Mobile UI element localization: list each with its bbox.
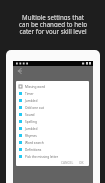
staticText: Spelling <box>25 120 37 124</box>
staticText: CANCEL <box>61 161 74 165</box>
button[interactable]: Sound <box>16 111 89 118</box>
staticText: Pick the missing letter <box>25 155 59 159</box>
staticText: Jumbled <box>25 127 38 131</box>
staticText: OK <box>79 161 84 165</box>
button[interactable]: Jumbled <box>16 125 89 132</box>
staticText: Rhymes <box>25 134 37 138</box>
staticText: Timer <box>25 92 34 96</box>
button[interactable]: CANCEL <box>60 161 75 165</box>
button[interactable]: Back <box>17 68 23 74</box>
staticText: Jumbled <box>25 99 38 103</box>
staticText: Missing word <box>25 85 45 89</box>
staticText: Multiple settings that <box>22 13 84 20</box>
button[interactable]: Odd one out <box>16 104 89 111</box>
button[interactable]: Spelling <box>16 118 89 125</box>
button[interactable]: Timer <box>16 90 89 97</box>
staticText: Sound <box>25 113 35 117</box>
staticText: cater for your skill level <box>19 27 87 34</box>
button[interactable]: Word search <box>16 139 89 146</box>
button[interactable]: Rhymes <box>16 132 89 139</box>
button[interactable]: Missing word <box>16 83 89 90</box>
staticText: Word search <box>25 141 44 145</box>
staticText: Odd one out <box>25 106 44 110</box>
staticText: can be changed to help <box>19 20 87 27</box>
staticText: Definitions <box>25 148 42 152</box>
button[interactable]: Definitions <box>16 146 89 153</box>
button[interactable]: Pick the missing letter <box>16 153 89 160</box>
button[interactable]: Jumbled <box>16 97 89 104</box>
button[interactable]: OK <box>78 161 85 165</box>
